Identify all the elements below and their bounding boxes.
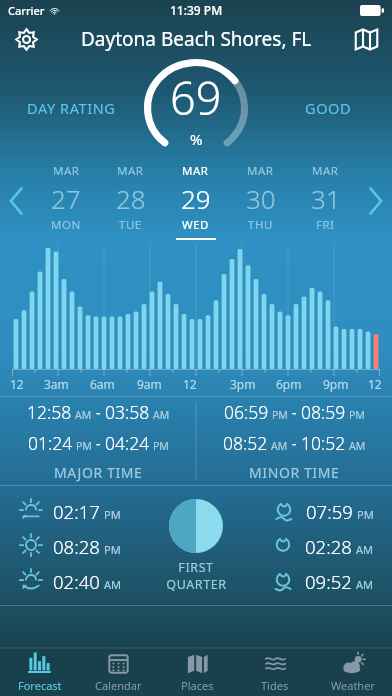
staticText: PM bbox=[76, 439, 92, 453]
staticText: - bbox=[292, 434, 297, 453]
button[interactable]: 07:59 bbox=[244, 498, 374, 594]
staticText: MAR bbox=[182, 163, 209, 179]
staticText: 9pm bbox=[323, 376, 349, 392]
staticText: MAJOR TIME bbox=[54, 463, 143, 482]
button[interactable]: MAR bbox=[34, 158, 98, 244]
staticText: 10:52 bbox=[301, 431, 346, 455]
staticText: 3pm bbox=[230, 376, 256, 392]
staticText: MAR bbox=[117, 163, 144, 179]
staticText: - bbox=[96, 434, 101, 453]
button[interactable]: Forecast bbox=[0, 648, 79, 696]
staticText: 6am bbox=[90, 376, 115, 392]
staticText: 12:58 bbox=[27, 400, 72, 424]
staticText: Carrier bbox=[8, 3, 45, 18]
staticText: 69 bbox=[170, 67, 222, 128]
staticText: THU bbox=[248, 217, 273, 233]
staticText: 02:28 bbox=[305, 534, 352, 559]
button[interactable]: Places bbox=[158, 648, 236, 696]
button[interactable]: Calendar bbox=[79, 648, 158, 696]
staticText: AM bbox=[356, 542, 374, 557]
staticText: QUARTER bbox=[166, 576, 227, 593]
staticText: AM bbox=[75, 408, 92, 422]
staticText: 6pm bbox=[276, 376, 302, 392]
button[interactable]: 02:17 bbox=[18, 498, 148, 594]
staticText: PM bbox=[357, 507, 374, 522]
staticText: PM bbox=[272, 408, 288, 422]
staticText: 12 bbox=[368, 376, 382, 392]
staticText: AM bbox=[271, 439, 288, 453]
staticText: MAR bbox=[312, 163, 339, 179]
button[interactable]: Weather bbox=[314, 648, 392, 696]
button[interactable]: 06:59 bbox=[196, 396, 392, 486]
button[interactable]: Map bbox=[346, 20, 386, 58]
staticText: - bbox=[292, 403, 297, 422]
staticText: PM bbox=[104, 542, 121, 557]
staticText: 27 bbox=[51, 181, 81, 216]
staticText: TUE bbox=[119, 217, 142, 233]
staticText: AM bbox=[349, 439, 366, 453]
button[interactable]: MAR bbox=[293, 158, 358, 244]
staticText: 08:28 bbox=[53, 534, 100, 559]
staticText: MINOR TIME bbox=[249, 463, 340, 482]
staticText: 02:40 bbox=[53, 569, 100, 594]
button[interactable]: Next day bbox=[358, 158, 392, 244]
staticText: Daytona Beach Shores, FL bbox=[81, 26, 312, 52]
button[interactable]: Settings bbox=[6, 20, 46, 58]
staticText: WED bbox=[182, 217, 209, 233]
staticText: 04:24 bbox=[105, 431, 150, 455]
staticText: Weather bbox=[331, 678, 375, 693]
staticText: PM bbox=[153, 439, 169, 453]
staticText: PM bbox=[349, 408, 365, 422]
staticText: PM bbox=[104, 507, 121, 522]
staticText: Places bbox=[181, 678, 214, 693]
staticText: 08:59 bbox=[301, 400, 346, 424]
button[interactable]: MAR bbox=[163, 158, 228, 244]
staticText: MON bbox=[51, 217, 81, 233]
staticText: 3am bbox=[44, 376, 69, 392]
staticText: MAR bbox=[53, 163, 80, 179]
staticText: AM bbox=[104, 577, 122, 592]
staticText: GOOD bbox=[305, 98, 352, 118]
staticText: FIRST bbox=[178, 559, 214, 576]
staticText: 11:39 PM bbox=[170, 2, 223, 18]
button[interactable]: Previous day bbox=[0, 158, 34, 244]
staticText: 02:17 bbox=[53, 499, 100, 524]
staticText: FRI bbox=[316, 217, 335, 233]
staticText: 28 bbox=[116, 181, 146, 216]
staticText: - bbox=[96, 403, 101, 422]
button[interactable]: MAR bbox=[228, 158, 293, 244]
button[interactable]: FIRST bbox=[148, 499, 244, 593]
button[interactable]: Tides bbox=[236, 648, 314, 696]
staticText: 9am bbox=[137, 376, 162, 392]
button[interactable]: 12:58 bbox=[0, 396, 196, 486]
staticText: MAR bbox=[247, 163, 274, 179]
staticText: AM bbox=[356, 577, 374, 592]
staticText: 29 bbox=[181, 181, 211, 216]
staticText: DAY RATING bbox=[27, 98, 116, 118]
staticText: 08:52 bbox=[223, 431, 268, 455]
staticText: 31 bbox=[311, 181, 341, 216]
staticText: 12 bbox=[183, 376, 197, 392]
staticText: 30 bbox=[246, 181, 276, 216]
staticText: Forecast bbox=[18, 678, 62, 693]
staticText: % bbox=[190, 129, 203, 149]
staticText: Calendar bbox=[95, 678, 142, 693]
staticText: 07:59 bbox=[306, 499, 353, 524]
staticText: 03:58 bbox=[105, 400, 150, 424]
staticText: Tides bbox=[261, 678, 289, 693]
button[interactable]: MAR bbox=[98, 158, 163, 244]
staticText: 06:59 bbox=[224, 400, 269, 424]
staticText: AM bbox=[153, 408, 170, 422]
staticText: 01:24 bbox=[28, 431, 73, 455]
staticText: 12 bbox=[10, 376, 24, 392]
staticText: 09:52 bbox=[305, 569, 352, 594]
